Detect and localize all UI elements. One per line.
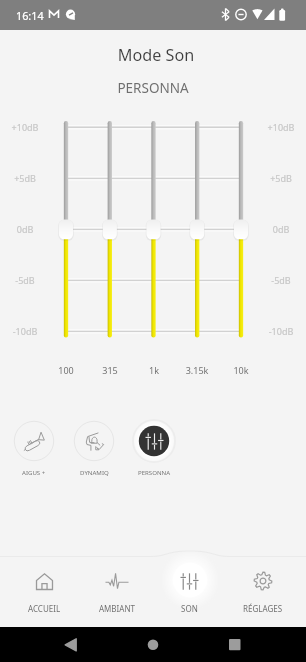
- staticText: 0dB: [261, 223, 301, 235]
- staticText: Mode Son: [3, 44, 306, 66]
- staticText: 16:14: [16, 8, 44, 23]
- staticText: 10k: [221, 364, 261, 376]
- button[interactable]: AIGUS +: [4, 419, 64, 476]
- button[interactable]: Ambiant: [79, 562, 155, 614]
- staticText: 3.15k: [177, 364, 217, 376]
- staticText: -10dB: [5, 325, 45, 337]
- staticText: -5dB: [261, 274, 301, 286]
- staticText: 315: [90, 364, 130, 376]
- button[interactable]: Réglages: [225, 562, 301, 614]
- staticText: 100: [46, 364, 86, 376]
- button[interactable]: Accueil: [6, 562, 82, 614]
- staticText: DYNAMIQ: [80, 468, 109, 476]
- staticText: AIGUS +: [22, 468, 46, 476]
- staticText: +5dB: [261, 172, 301, 184]
- staticText: RÉGLAGES: [243, 603, 283, 614]
- staticText: +10dB: [5, 121, 45, 133]
- staticText: -10dB: [261, 325, 301, 337]
- staticText: AMBIANT: [99, 603, 135, 614]
- staticText: 1k: [134, 364, 174, 376]
- button[interactable]: Son: [151, 562, 227, 614]
- staticText: ACCUEIL: [28, 603, 61, 614]
- button[interactable]: DYNAMIQ: [64, 419, 124, 476]
- staticText: 0dB: [5, 223, 45, 235]
- staticText: PERSONNA: [138, 468, 171, 476]
- staticText: +5dB: [5, 172, 45, 184]
- staticText: PERSONNA: [0, 79, 306, 97]
- staticText: -5dB: [5, 274, 45, 286]
- button[interactable]: PERSONNA: [124, 419, 184, 476]
- staticText: +10dB: [261, 121, 301, 133]
- staticText: SON: [181, 603, 198, 614]
